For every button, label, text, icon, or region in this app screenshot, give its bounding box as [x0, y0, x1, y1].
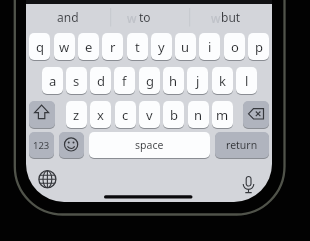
staticText: t [135, 38, 140, 56]
staticText: r [110, 38, 116, 56]
staticText: but [221, 9, 241, 25]
button[interactable]: n [188, 101, 209, 128]
button[interactable] [243, 101, 269, 128]
staticText: j [196, 72, 200, 90]
button[interactable]: t [127, 33, 148, 60]
button[interactable]: s [66, 67, 87, 94]
staticText: 123 [33, 139, 50, 152]
button[interactable]: o [224, 33, 245, 60]
staticText: g [146, 72, 154, 90]
button[interactable]: z [66, 101, 87, 128]
button[interactable]: v [139, 101, 160, 128]
staticText: a [49, 72, 57, 90]
staticText: f [122, 72, 127, 90]
staticText: w [211, 10, 221, 26]
staticText: y [158, 38, 165, 56]
button[interactable]: but [216, 8, 246, 25]
button[interactable]: 123 [29, 132, 54, 158]
staticText: m [216, 106, 229, 124]
staticText: l [245, 72, 249, 90]
staticText: k [219, 72, 226, 90]
staticText: w [59, 38, 70, 56]
button[interactable]: a [42, 67, 63, 94]
staticText: space [135, 138, 164, 152]
button[interactable]: u [175, 33, 196, 60]
button[interactable]: w [54, 33, 75, 60]
button[interactable]: m [212, 101, 233, 128]
button[interactable]: r [102, 33, 123, 60]
staticText: h [169, 72, 178, 90]
button[interactable] [29, 101, 55, 128]
button[interactable]: to [130, 8, 160, 25]
button[interactable]: h [163, 67, 184, 94]
staticText: c [122, 106, 129, 124]
button[interactable]: c [115, 101, 136, 128]
staticText: w [127, 10, 137, 26]
staticText: z [73, 106, 80, 124]
button[interactable]: y [151, 33, 172, 60]
button[interactable]: and [38, 8, 98, 25]
button[interactable]: f [114, 67, 135, 94]
button[interactable]: e [78, 33, 99, 60]
staticText: i [208, 38, 212, 56]
staticText: p [255, 38, 263, 56]
staticText: return [226, 138, 258, 152]
button[interactable]: j [187, 67, 208, 94]
button[interactable]: g [139, 67, 160, 94]
button[interactable] [59, 132, 84, 158]
staticText: o [231, 38, 239, 56]
staticText: q [36, 38, 44, 56]
button[interactable]: q [29, 33, 50, 60]
staticText: n [194, 106, 203, 124]
staticText: e [85, 38, 93, 56]
button[interactable]: k [212, 67, 233, 94]
staticText: b [170, 106, 178, 124]
staticText: d [97, 72, 105, 90]
button[interactable]: x [90, 101, 111, 128]
button[interactable]: i [199, 33, 220, 60]
staticText: s [73, 72, 80, 90]
button[interactable]: return [215, 132, 269, 158]
button[interactable]: p [248, 33, 269, 60]
staticText: and [57, 9, 79, 25]
button[interactable]: b [163, 101, 184, 128]
staticText: u [181, 38, 190, 56]
staticText: to [139, 9, 151, 25]
button[interactable]: d [90, 67, 111, 94]
staticText: x [97, 106, 104, 124]
staticText: v [146, 106, 153, 124]
button[interactable]: space [89, 132, 210, 158]
button[interactable]: l [236, 67, 257, 94]
